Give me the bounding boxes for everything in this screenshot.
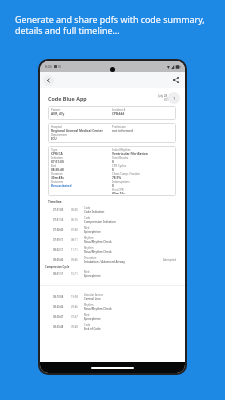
- staticText: 07:51:00: [51, 160, 64, 164]
- staticText: Patient: [51, 108, 61, 112]
- button[interactable]: 08:01:11: [40, 269, 185, 279]
- staticText: Rhythm: [84, 236, 94, 240]
- staticText: Timeline: [48, 200, 62, 204]
- staticText: AVR, 47y: [51, 112, 65, 116]
- button[interactable]: 07:59:11: [40, 235, 185, 245]
- staticText: 37:47: [71, 315, 81, 319]
- staticText: Procedure: [84, 256, 97, 260]
- staticText: CPR Cycles: [112, 164, 127, 168]
- staticText: 19:58: [71, 295, 81, 299]
- staticText: 0: [112, 184, 114, 188]
- button[interactable]: 07:58:40: [40, 225, 185, 235]
- staticText: Med: [84, 313, 90, 317]
- staticText: Attempted: [163, 258, 177, 262]
- staticText: Compression Cycle: [45, 265, 70, 269]
- staticText: 07:40: [71, 228, 81, 232]
- staticText: 29:46: [71, 305, 81, 309]
- button[interactable]: 07:51:16: [40, 215, 185, 225]
- button[interactable]: Page 1: [168, 92, 180, 104]
- staticText: 07:51:16: [53, 218, 67, 222]
- staticText: 08:02:11: [53, 248, 67, 252]
- staticText: not informed: [112, 129, 133, 133]
- staticText: Resuscitated: [51, 184, 72, 188]
- staticText: Type: [51, 148, 58, 152]
- staticText: First CPR: [112, 188, 124, 192]
- staticText: Ventricular Fibrillation: [112, 152, 148, 156]
- staticText: End: [51, 164, 57, 168]
- staticText: Outcome: [51, 180, 64, 184]
- staticText: Profession: [112, 125, 126, 129]
- staticText: End of Code: [84, 327, 101, 331]
- staticText: Initial Rhythm: [112, 148, 131, 152]
- button[interactable]: Share: [171, 75, 181, 85]
- staticText: Code Blue App: [48, 95, 87, 102]
- staticText: Rosa/Rhythm Check: [84, 250, 112, 254]
- staticText: Duration: [51, 172, 63, 176]
- staticText: Rosa/Rhythm Check: [84, 307, 112, 311]
- button[interactable]: 08:20:46: [40, 302, 185, 312]
- staticText: Med: [84, 226, 90, 230]
- staticText: Department: [51, 133, 68, 137]
- staticText: CPB###: [112, 112, 125, 116]
- staticText: Epinephrine: [84, 230, 101, 234]
- staticText: Interruptions: [112, 180, 130, 184]
- staticText: 0: [112, 160, 114, 164]
- staticText: 08:00:46: [53, 258, 67, 262]
- staticText: 11:11: [71, 248, 81, 252]
- staticText: Total Shocks: [112, 156, 129, 160]
- staticText: Code: [84, 216, 91, 220]
- staticText: Hospital: [51, 125, 62, 129]
- staticText: 00m 16s: [112, 192, 125, 194]
- staticText: 07:51:36: [164, 98, 176, 102]
- staticText: 08:01:11: [53, 272, 67, 276]
- staticText: ICU: [51, 137, 57, 141]
- staticText: Incident #: [112, 108, 126, 112]
- staticText: Rhythm: [84, 246, 94, 250]
- staticText: Code Initiation: [84, 210, 105, 214]
- button[interactable]: 08:00:46: [40, 255, 185, 265]
- staticText: 08:20:46: [53, 305, 67, 309]
- staticText: 08:28:47: [53, 315, 67, 319]
- staticText: July 28, 2024: [158, 94, 176, 98]
- staticText: Regional General Medical Center: [51, 129, 103, 133]
- staticText: 0: [112, 168, 114, 172]
- staticText: 78.9%: [112, 176, 122, 180]
- staticText: Initiation: [51, 156, 63, 160]
- staticText: 00:00: [71, 208, 81, 212]
- staticText: 10:11: [71, 272, 81, 276]
- staticText: Intubation / Advanced Airway: [84, 260, 125, 264]
- staticText: 39:48: [71, 325, 81, 329]
- staticText: 8:04: [45, 64, 52, 69]
- staticText: Epinephrine: [84, 274, 101, 278]
- staticText: Central Line: [84, 297, 101, 301]
- staticText: Med: [84, 270, 90, 274]
- staticText: Compression Initiation: [84, 220, 116, 224]
- staticText: Epinephrine: [84, 317, 101, 321]
- staticText: 30m 48s: [51, 176, 64, 180]
- staticText: Generate and share pdfs with code summar…: [15, 13, 205, 36]
- staticText: 08:30:48: [53, 325, 67, 329]
- staticText: 08:30:48: [51, 168, 64, 172]
- staticText: Code: [84, 206, 91, 210]
- staticText: Rosa/Rhythm Check: [84, 240, 112, 244]
- staticText: 08:10:58: [53, 295, 67, 299]
- staticText: 00:16: [71, 218, 81, 222]
- staticText: 07:51:00: [53, 208, 67, 212]
- button[interactable]: 08:30:48: [40, 322, 185, 332]
- staticText: Rhythm: [84, 303, 94, 307]
- button[interactable]: 07:51:00: [40, 205, 185, 215]
- staticText: Code: [84, 323, 91, 327]
- staticText: CPR/CA: [51, 152, 63, 156]
- staticText: 08:11: [71, 238, 81, 242]
- button[interactable]: 08:02:11: [40, 245, 185, 255]
- staticText: 1: [173, 96, 176, 101]
- staticText: 07:59:11: [53, 238, 67, 242]
- staticText: Vascular Access: [84, 293, 104, 297]
- button[interactable]: Back: [43, 75, 54, 86]
- staticText: 07:58:40: [53, 228, 67, 232]
- staticText: 09:46: [71, 258, 81, 262]
- staticText: Chest Comp. Fraction: [112, 172, 141, 176]
- button[interactable]: 08:28:47: [40, 312, 185, 322]
- button[interactable]: 08:10:58: [40, 292, 185, 302]
